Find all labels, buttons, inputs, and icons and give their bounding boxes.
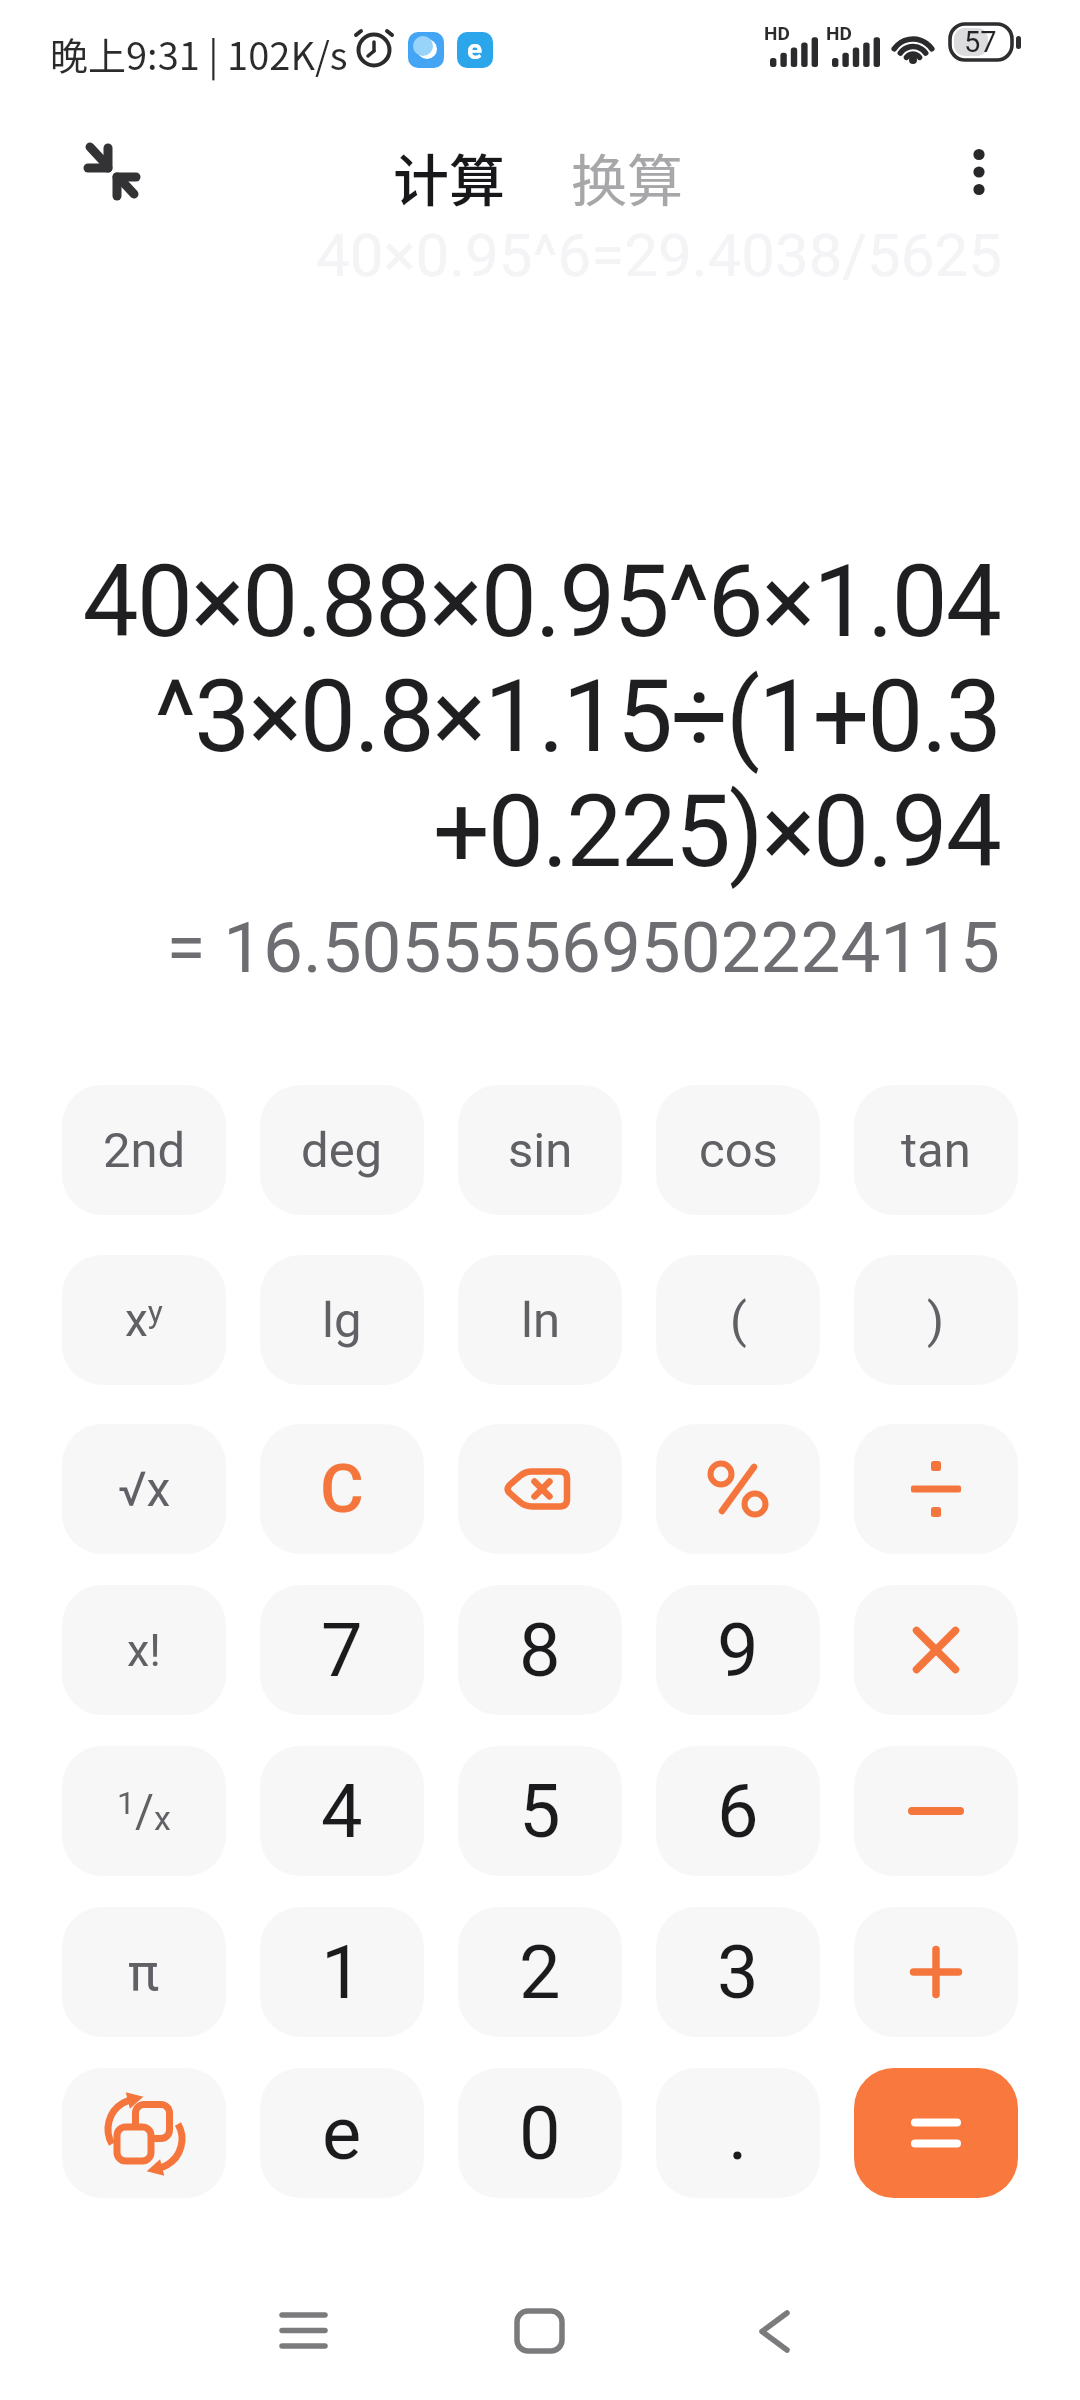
button[interactable]: tan: [854, 1085, 1018, 1215]
button[interactable]: 7: [260, 1585, 424, 1715]
staticText: 8: [519, 1607, 561, 1694]
staticText: .: [728, 2090, 748, 2177]
button[interactable]: [263, 2290, 343, 2370]
staticText: tan: [901, 1122, 971, 1179]
button[interactable]: 1/x: [62, 1746, 226, 1876]
button[interactable]: π: [62, 1907, 226, 2037]
button[interactable]: [944, 137, 1014, 207]
staticText: 0: [519, 2090, 561, 2177]
staticText: π: [128, 1942, 160, 2003]
button[interactable]: 8: [458, 1585, 622, 1715]
button[interactable]: x!: [62, 1585, 226, 1715]
staticText: 4: [321, 1768, 363, 1855]
button[interactable]: 换算: [552, 136, 702, 208]
button[interactable]: sin: [458, 1085, 622, 1215]
staticText: 5: [519, 1768, 561, 1855]
staticText: C: [320, 1450, 364, 1529]
button[interactable]: [70, 126, 160, 216]
button[interactable]: .: [656, 2068, 820, 2198]
button[interactable]: (: [656, 1255, 820, 1385]
staticText: 40×0.95^6=29.4038/5625: [0, 220, 1002, 290]
button[interactable]: e: [260, 2068, 424, 2198]
button[interactable]: [458, 1424, 622, 1554]
button[interactable]: 2: [458, 1907, 622, 2037]
staticText: 7: [321, 1607, 363, 1694]
staticText: ln: [521, 1292, 560, 1349]
staticText: lg: [322, 1292, 362, 1349]
button[interactable]: 4: [260, 1746, 424, 1876]
button[interactable]: deg: [260, 1085, 424, 1215]
staticText: cos: [699, 1122, 778, 1179]
staticText: HD: [826, 22, 852, 44]
button[interactable]: 3: [656, 1907, 820, 2037]
staticText: = 16.50555569502224115: [0, 906, 1000, 989]
button[interactable]: √x: [62, 1424, 226, 1554]
button[interactable]: C: [260, 1424, 424, 1554]
staticText: ): [927, 1292, 945, 1349]
button[interactable]: [854, 1907, 1018, 2037]
button[interactable]: 计算: [374, 136, 524, 208]
button[interactable]: [854, 1424, 1018, 1554]
staticText: xy: [125, 1293, 163, 1347]
button[interactable]: 6: [656, 1746, 820, 1876]
button[interactable]: [854, 1585, 1018, 1715]
button[interactable]: cos: [656, 1085, 820, 1215]
button[interactable]: 1: [260, 1907, 424, 2037]
staticText: x!: [127, 1624, 161, 1677]
button[interactable]: xy: [62, 1255, 226, 1385]
staticText: 6: [717, 1768, 759, 1855]
staticText: e: [322, 2090, 362, 2177]
staticText: 1: [321, 1929, 363, 2016]
staticText: √x: [118, 1461, 171, 1517]
button[interactable]: 9: [656, 1585, 820, 1715]
button[interactable]: [854, 1746, 1018, 1876]
staticText: 9: [717, 1607, 759, 1694]
button[interactable]: [499, 2290, 579, 2370]
button[interactable]: [62, 2068, 226, 2198]
staticText: 57: [964, 25, 997, 59]
button[interactable]: ): [854, 1255, 1018, 1385]
staticText: 2nd: [103, 1122, 186, 1179]
button[interactable]: 5: [458, 1746, 622, 1876]
staticText: deg: [301, 1122, 383, 1179]
button[interactable]: 0: [458, 2068, 622, 2198]
staticText: 3: [717, 1929, 759, 2016]
button[interactable]: [735, 2290, 815, 2370]
button[interactable]: 2nd: [62, 1085, 226, 1215]
staticText: 40×0.88×0.95^6×1.04 ^3×0.8×1.15÷(1+0.3 +…: [0, 543, 1000, 890]
staticText: e: [467, 33, 483, 66]
staticText: 换算: [571, 136, 683, 208]
staticText: 1/x: [117, 1784, 171, 1839]
staticText: 计算: [393, 136, 505, 208]
button[interactable]: [854, 2068, 1018, 2198]
staticText: sin: [508, 1122, 573, 1179]
staticText: 2: [519, 1929, 561, 2016]
staticText: (: [730, 1292, 747, 1349]
button[interactable]: [656, 1424, 820, 1554]
staticText: HD: [764, 22, 790, 44]
staticText: 晚上9:31 | 102K/s: [50, 26, 348, 81]
button[interactable]: lg: [260, 1255, 424, 1385]
button[interactable]: ln: [458, 1255, 622, 1385]
